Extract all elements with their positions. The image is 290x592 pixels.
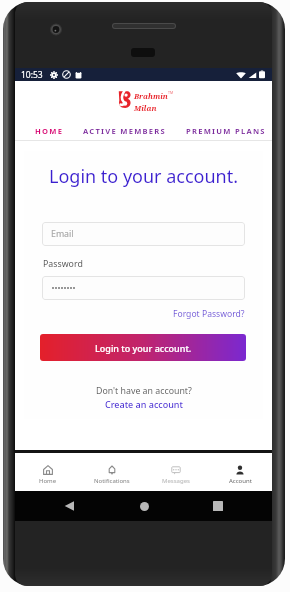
button[interactable] (42, 276, 245, 300)
button[interactable]: Email (42, 222, 245, 246)
staticText: Brahmin (134, 91, 168, 101)
staticText: Login to your account. (95, 342, 192, 354)
button[interactable]: Recent apps (209, 497, 227, 515)
staticText: Messages (162, 477, 190, 485)
button[interactable]: Create an account (105, 398, 183, 410)
button[interactable]: Forgot Password? (173, 308, 245, 320)
button[interactable]: Messages (144, 465, 208, 491)
button[interactable]: Home (135, 497, 153, 515)
staticText: Milan (134, 103, 157, 113)
staticText: 10:53 (21, 69, 43, 81)
staticText: HOME (35, 126, 64, 136)
button[interactable]: PREMIUM PLANS (167, 122, 266, 140)
staticText: TM (168, 90, 174, 95)
staticText: Home (39, 477, 57, 485)
button[interactable]: Account (208, 465, 272, 491)
button[interactable]: Back (60, 497, 78, 515)
staticText: Email (51, 228, 74, 240)
staticText: ACTIVE MEMBERS (83, 126, 167, 136)
staticText: Password (43, 258, 83, 270)
staticText: Notifications (94, 477, 130, 485)
button[interactable]: Login to your account. (40, 334, 246, 361)
button[interactable]: HOME (15, 122, 64, 140)
staticText: Account (229, 477, 252, 485)
button[interactable]: Home (15, 465, 80, 491)
button[interactable]: Notifications (80, 465, 144, 491)
staticText: Don't have an account? (96, 385, 192, 397)
button[interactable]: ACTIVE MEMBERS (64, 122, 167, 140)
staticText: Login to your account. (49, 164, 239, 189)
staticText: PREMIUM PLANS (186, 126, 266, 136)
